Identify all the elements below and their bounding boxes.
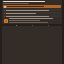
button[interactable] — [3, 15, 61, 17]
button[interactable] — [3, 5, 61, 8]
button[interactable] — [2, 0, 62, 5]
button[interactable]: Home — [14, 24, 18, 26]
button[interactable] — [3, 12, 61, 14]
button[interactable] — [3, 9, 61, 11]
button[interactable]: Add — [4, 19, 8, 23]
button[interactable]: Profile — [46, 24, 50, 26]
button[interactable]: Search — [30, 24, 34, 26]
